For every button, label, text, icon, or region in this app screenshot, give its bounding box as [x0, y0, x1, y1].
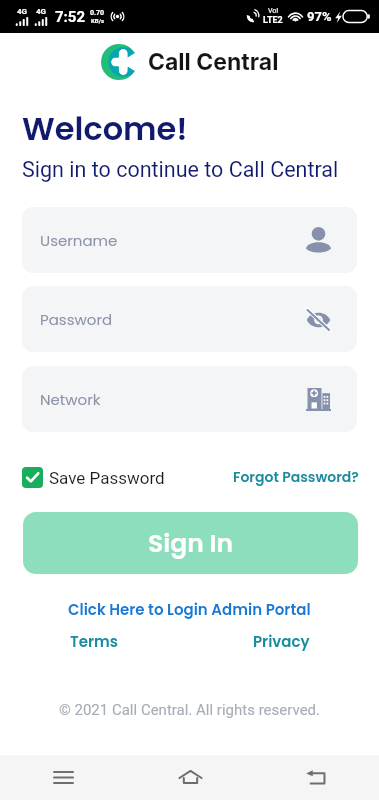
button[interactable]: Recent apps — [0, 755, 127, 800]
button[interactable]: Sign In — [23, 512, 358, 574]
staticText: 4G — [36, 7, 47, 16]
staticText: Network — [40, 389, 101, 410]
staticText: Save Password — [49, 468, 165, 488]
staticText: LTE2 — [263, 15, 283, 26]
button[interactable]: Click Here to Login Admin Portal — [68, 599, 311, 620]
staticText: 97% — [307, 9, 332, 24]
button[interactable]: Back — [253, 755, 379, 800]
staticText: Welcome! — [22, 106, 188, 151]
staticText: © 2021 Call Central. All rights reserved… — [59, 701, 320, 719]
other: Network — [306, 388, 331, 411]
button[interactable]: Username — [22, 207, 357, 273]
staticText: KB/s — [91, 17, 104, 24]
staticText: 7:52 — [55, 8, 86, 26]
staticText: 0.70 — [90, 9, 105, 17]
staticText: Sign In — [148, 526, 234, 561]
staticText: 4G — [17, 7, 28, 16]
button[interactable]: Network — [22, 366, 357, 432]
other: Username — [306, 227, 331, 253]
button[interactable]: Privacy — [253, 631, 310, 652]
staticText: Username — [40, 230, 118, 251]
button[interactable]: Save Password — [22, 467, 165, 488]
staticText: Sign in to continue to Call Central — [22, 157, 339, 182]
button[interactable]: Password — [22, 286, 357, 352]
button[interactable]: Terms — [70, 631, 118, 652]
staticText: VoI — [268, 7, 279, 15]
button[interactable]: Home — [127, 755, 253, 800]
other: Show password — [306, 309, 331, 330]
staticText: Password — [40, 309, 113, 330]
staticText: Call Central — [148, 48, 279, 76]
button[interactable]: Forgot Password? — [233, 467, 359, 487]
